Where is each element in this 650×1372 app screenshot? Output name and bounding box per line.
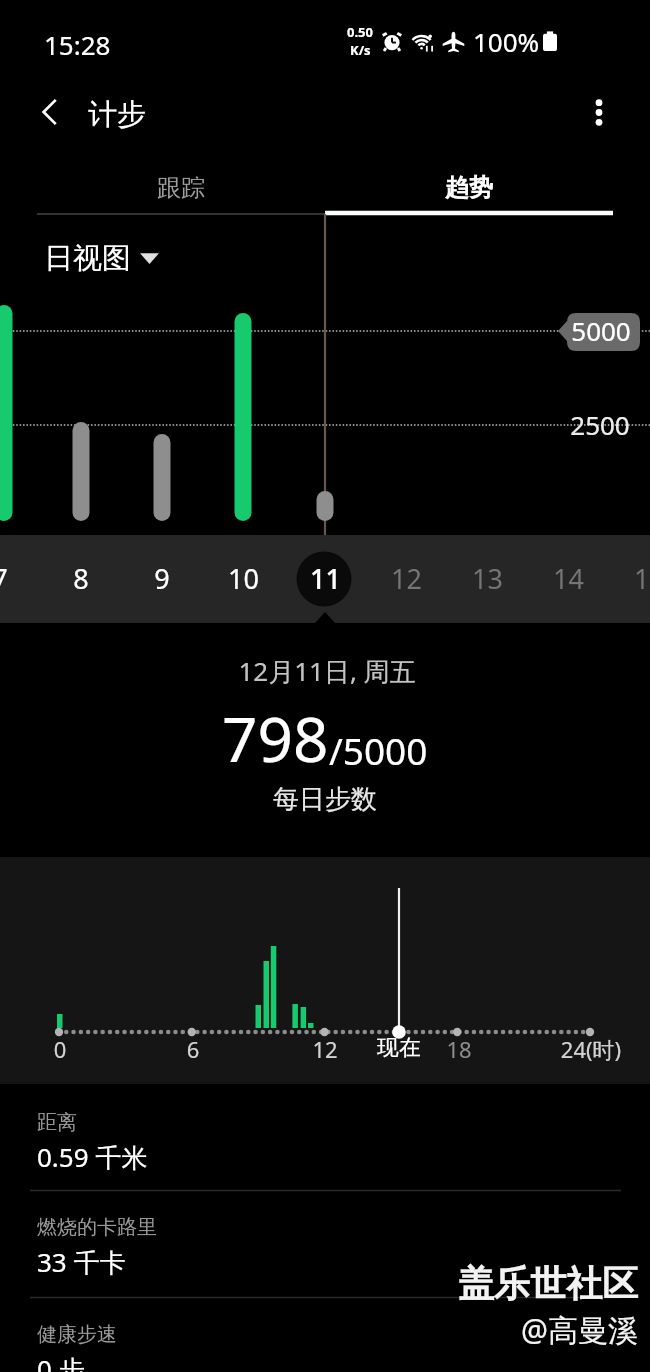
staticText: 0.50 bbox=[347, 23, 373, 41]
button[interactable]: 9 bbox=[122, 535, 202, 623]
staticText: 15:28 bbox=[44, 27, 111, 62]
button[interactable]: 14 bbox=[528, 535, 608, 623]
staticText: /5000 bbox=[329, 725, 428, 775]
staticText: 健康步速 bbox=[37, 1322, 117, 1347]
staticText: 5000 bbox=[381, 313, 650, 348]
button[interactable]: More options bbox=[573, 86, 625, 138]
button[interactable]: Back bbox=[22, 84, 78, 140]
staticText: 6 bbox=[0, 1034, 413, 1064]
button[interactable]: 12 bbox=[366, 535, 446, 623]
staticText: 计步 bbox=[88, 96, 146, 133]
staticText: K/s bbox=[350, 41, 371, 59]
staticText: 0 步 bbox=[37, 1351, 85, 1372]
staticText: 8 bbox=[73, 560, 89, 597]
staticText: 每日步数 bbox=[105, 783, 545, 816]
staticText: 0 bbox=[0, 1034, 280, 1064]
staticText: 798 bbox=[222, 696, 329, 780]
staticText: 距离 bbox=[37, 1110, 77, 1135]
staticText: 18 bbox=[239, 1034, 650, 1064]
staticText: 10 bbox=[228, 560, 259, 597]
button[interactable]: 距离 bbox=[0, 1085, 650, 1190]
staticText: 2500 bbox=[380, 407, 650, 442]
button[interactable]: 趋势 bbox=[325, 162, 613, 214]
staticText: 11 bbox=[310, 560, 341, 597]
staticText: 15 bbox=[634, 560, 650, 597]
staticText: 100% bbox=[473, 24, 540, 59]
staticText: 24(时) bbox=[371, 1034, 650, 1064]
staticText: 日视图 bbox=[44, 240, 131, 277]
staticText: 燃烧的卡路里 bbox=[37, 1215, 157, 1240]
button[interactable]: 8 bbox=[41, 535, 121, 623]
staticText: 33 千卡 bbox=[37, 1244, 126, 1280]
button[interactable]: 日视图 bbox=[44, 240, 159, 277]
staticText: 12月11日, 周五 bbox=[107, 653, 547, 689]
staticText: 7 bbox=[0, 560, 8, 597]
staticText: 跟踪 bbox=[157, 173, 205, 203]
staticText: 9 bbox=[154, 560, 170, 597]
staticText: 13 bbox=[472, 560, 503, 597]
staticText: 现在 bbox=[179, 1034, 619, 1062]
staticText: 盖乐世社区 bbox=[458, 1261, 638, 1306]
staticText: 12 bbox=[391, 560, 422, 597]
staticText: 14 bbox=[553, 560, 584, 597]
staticText: 12 bbox=[105, 1034, 545, 1064]
button[interactable]: 11 bbox=[285, 535, 365, 623]
button[interactable]: 7 bbox=[0, 535, 40, 623]
button[interactable]: 健康步速 bbox=[0, 1297, 650, 1372]
button[interactable]: 跟踪 bbox=[37, 162, 325, 214]
button[interactable]: 13 bbox=[447, 535, 527, 623]
staticText: @高曼溪 bbox=[521, 1309, 638, 1350]
button[interactable]: 燃烧的卡路里 bbox=[0, 1190, 650, 1295]
button[interactable]: 10 bbox=[203, 535, 283, 623]
staticText: 0.59 千米 bbox=[37, 1139, 148, 1175]
button[interactable]: 15 bbox=[609, 535, 650, 623]
staticText: 趋势 bbox=[445, 173, 493, 203]
